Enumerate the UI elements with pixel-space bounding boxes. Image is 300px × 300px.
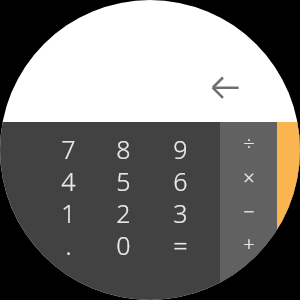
button[interactable]: ÷	[225, 127, 272, 159]
button[interactable]: −	[225, 195, 272, 227]
staticText: .	[65, 228, 72, 260]
button[interactable]: 5	[96, 164, 150, 196]
staticText: 3	[173, 196, 188, 228]
staticText: ×	[243, 164, 255, 191]
staticText: +	[243, 230, 255, 257]
staticText: 6	[173, 164, 188, 196]
button[interactable]: 3	[153, 196, 207, 228]
button[interactable]: 0	[96, 228, 150, 260]
button[interactable]: 4	[41, 164, 95, 196]
staticText: 9	[173, 132, 188, 164]
button[interactable]: 7	[41, 132, 95, 164]
staticText: 7	[61, 132, 76, 164]
button[interactable]: Back	[208, 70, 242, 104]
button[interactable]: ×	[225, 161, 272, 193]
staticText: 0	[116, 228, 131, 260]
button[interactable]: +	[225, 227, 272, 259]
staticText: 8	[116, 132, 131, 164]
button[interactable]: 8	[96, 132, 150, 164]
staticText: 2	[116, 196, 131, 228]
button[interactable]: 2	[96, 196, 150, 228]
button[interactable]: 6	[153, 164, 207, 196]
staticText: 5	[116, 164, 131, 196]
staticText: ÷	[243, 130, 255, 157]
button[interactable]: .	[41, 228, 95, 260]
staticText: =	[173, 228, 188, 260]
button[interactable]: =	[153, 228, 207, 260]
staticText: 4	[61, 164, 76, 196]
button[interactable]: 9	[153, 132, 207, 164]
staticText: 1	[61, 196, 76, 228]
button[interactable]: 1	[41, 196, 95, 228]
staticText: −	[243, 198, 255, 225]
